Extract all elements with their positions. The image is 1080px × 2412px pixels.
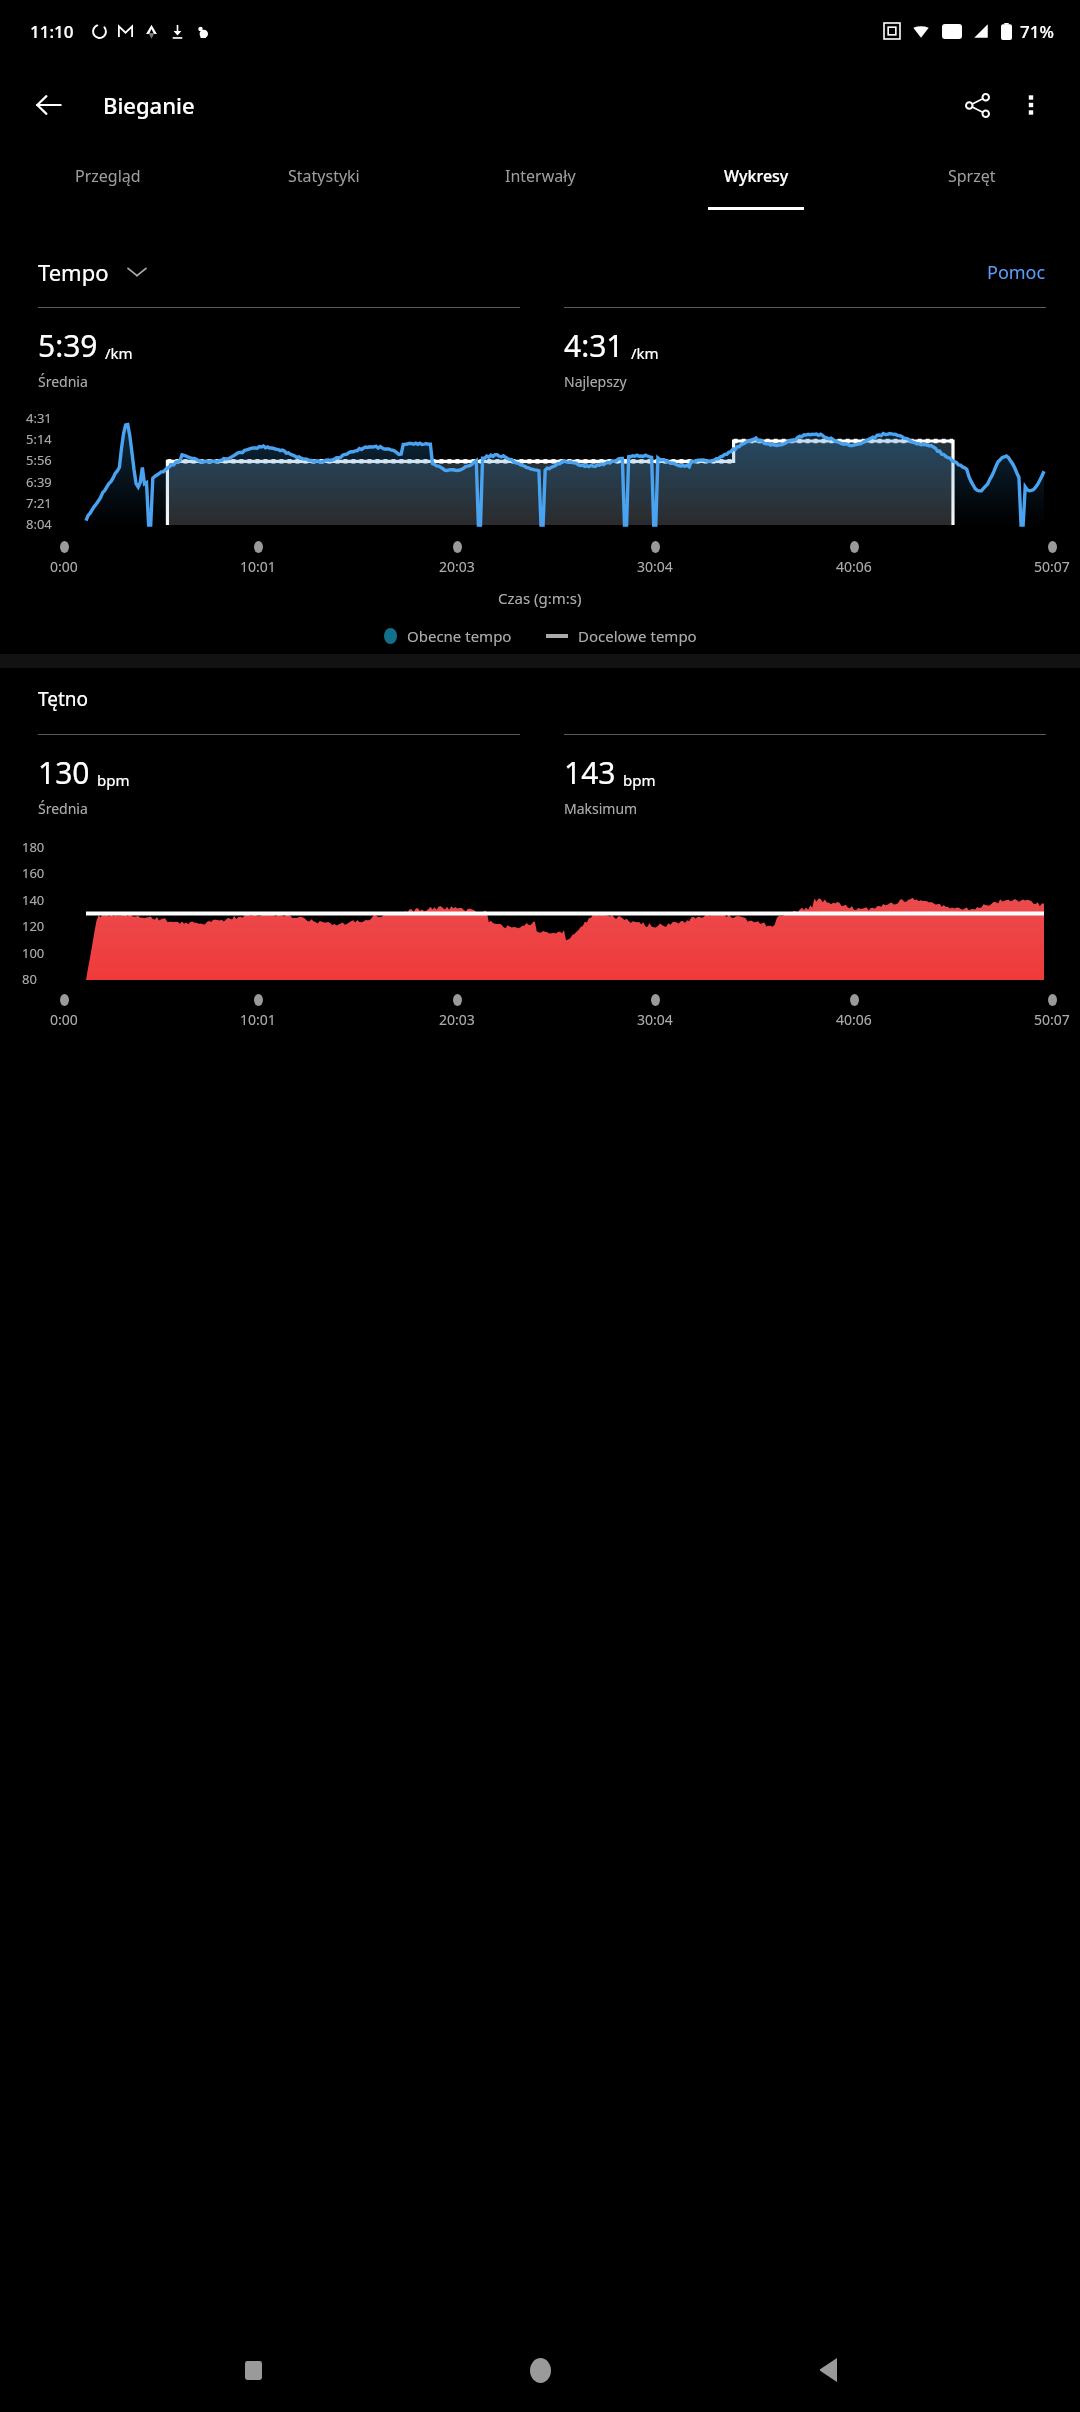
staticText: 50:07 (1034, 1010, 1070, 1029)
button[interactable]: Interwały (432, 147, 648, 235)
button[interactable]: More options (1004, 78, 1058, 132)
staticText: bpm (623, 770, 656, 790)
staticText: Interwały (505, 165, 576, 187)
staticText: 120 (22, 917, 45, 935)
staticText: 11:10 (30, 20, 74, 43)
staticText: Czas (g:m:s) (498, 588, 582, 608)
button[interactable]: Back (793, 2335, 863, 2405)
button[interactable]: Share (950, 78, 1004, 132)
staticText: 0:00 (50, 1010, 78, 1029)
staticText: Najlepszy (564, 372, 627, 391)
staticText: Maksimum (564, 799, 638, 818)
staticText: Bieganie (103, 90, 195, 120)
button[interactable]: Przegląd (0, 147, 216, 235)
staticText: 30:04 (637, 1010, 673, 1029)
staticText: 8:04 (26, 515, 52, 533)
staticText: 10:01 (240, 557, 276, 576)
button[interactable]: Tempo (38, 257, 147, 287)
staticText: Sprzęt (948, 165, 996, 187)
staticText: 40:06 (836, 1010, 872, 1029)
button[interactable]: Recent apps (218, 2335, 288, 2405)
staticText: 71% (1020, 20, 1054, 43)
staticText: 10:01 (240, 1010, 276, 1029)
staticText: 20:03 (439, 1010, 475, 1029)
staticText: 130 (38, 752, 90, 793)
staticText: Średnia (38, 372, 88, 391)
staticText: 100 (22, 944, 45, 962)
staticText: Wykresy (724, 165, 789, 187)
staticText: 50:07 (1034, 557, 1070, 576)
button[interactable]: Wykresy (648, 147, 864, 235)
staticText: /km (105, 343, 133, 363)
staticText: 4:31 (26, 409, 52, 427)
button[interactable]: Home (505, 2335, 575, 2405)
staticText: Tętno (38, 686, 89, 712)
button[interactable]: Back (22, 78, 76, 132)
staticText: /km (631, 343, 659, 363)
staticText: 7:21 (26, 494, 52, 512)
staticText: bpm (97, 770, 130, 790)
staticText: 5:14 (26, 430, 52, 448)
staticText: Obecne tempo (407, 626, 512, 646)
button[interactable]: Statystyki (216, 147, 432, 235)
staticText: Przegląd (75, 165, 141, 187)
staticText: Pomoc (987, 260, 1046, 285)
staticText: 143 (564, 752, 616, 793)
staticText: Średnia (38, 799, 88, 818)
staticText: 4:31 (564, 325, 624, 366)
staticText: 80 (22, 970, 37, 988)
staticText: 40:06 (836, 557, 872, 576)
staticText: Docelowe tempo (578, 626, 697, 646)
staticText: 160 (22, 864, 45, 882)
staticText: 5:39 (38, 325, 98, 366)
staticText: 6:39 (26, 473, 52, 491)
staticText: 0:00 (50, 557, 78, 576)
staticText: 30:04 (637, 557, 673, 576)
staticText: 180 (22, 838, 45, 856)
staticText: Tempo (38, 257, 109, 287)
staticText: Statystyki (288, 165, 360, 187)
staticText: 140 (22, 891, 45, 909)
staticText: 5:56 (26, 451, 52, 469)
button[interactable]: Pomoc (987, 260, 1046, 285)
staticText: 20:03 (439, 557, 475, 576)
button[interactable]: Sprzęt (864, 147, 1080, 235)
